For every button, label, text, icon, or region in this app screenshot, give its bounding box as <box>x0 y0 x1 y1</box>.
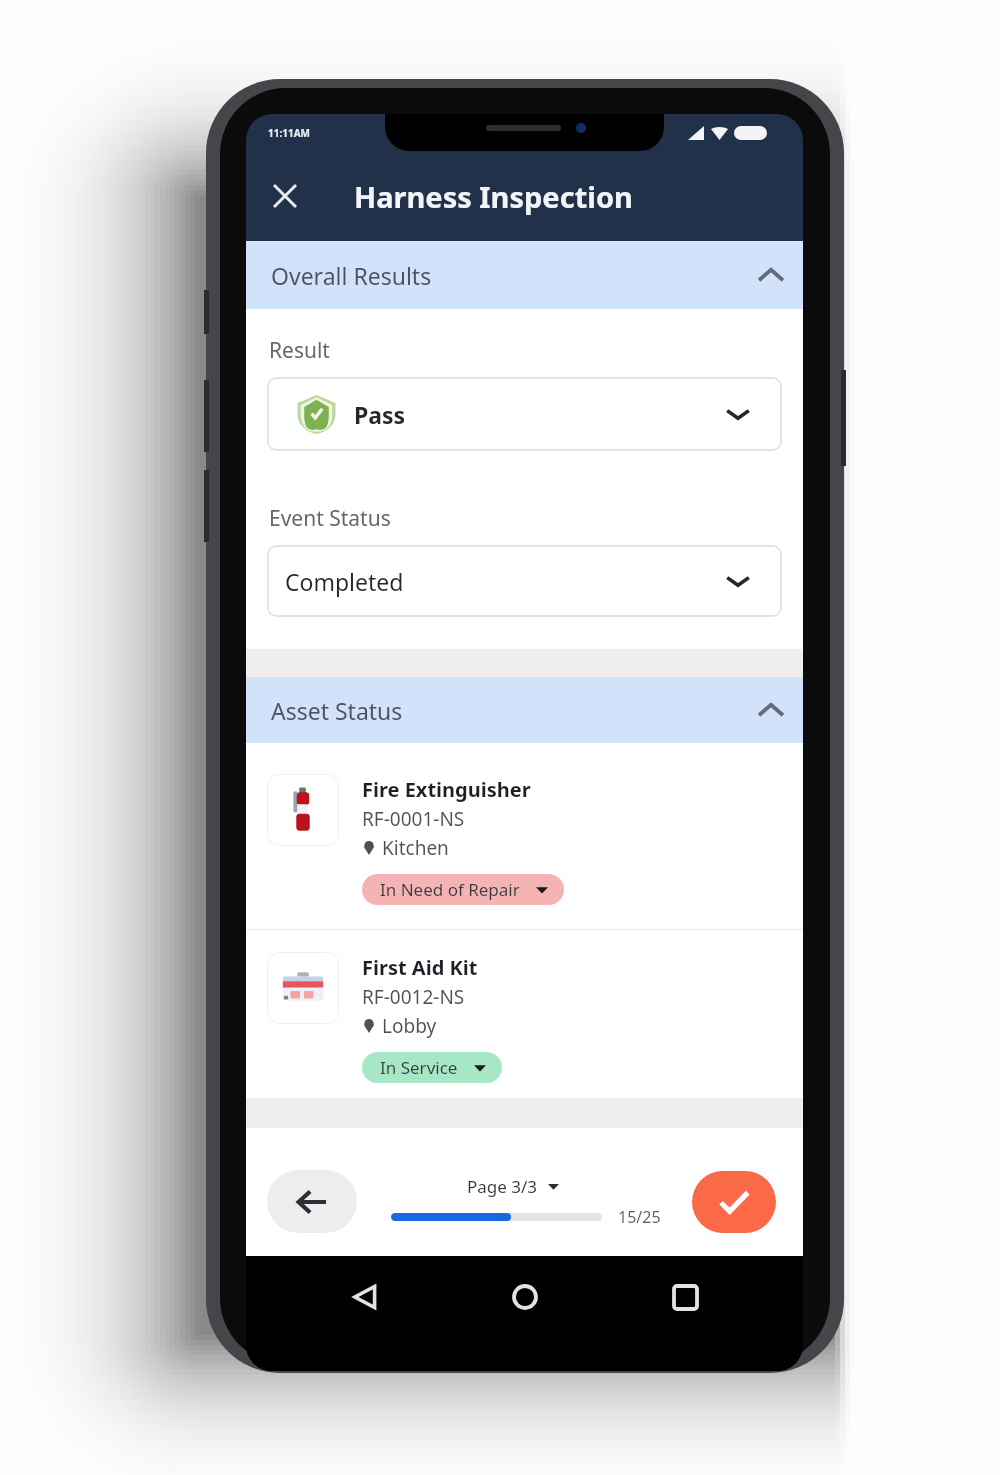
button[interactable]: Complete <box>692 1171 776 1233</box>
staticText: Lobby <box>382 1013 437 1039</box>
button[interactable]: Asset Status <box>246 677 803 743</box>
staticText: Page 3/3 <box>467 1175 538 1198</box>
staticText: RF-0012-NS <box>362 984 465 1010</box>
button[interactable]: Recent apps <box>662 1274 708 1320</box>
staticText: Event Status <box>269 504 391 533</box>
staticText: 11:11AM <box>268 126 311 140</box>
button[interactable]: Completed <box>267 545 782 617</box>
staticText: Asset Status <box>271 695 403 726</box>
button[interactable]: Back <box>342 1274 388 1320</box>
staticText: In Need of Repair <box>380 878 520 901</box>
button[interactable]: In Need of Repair <box>362 874 564 905</box>
button[interactable]: Fire Extinguisher <box>246 743 803 929</box>
button[interactable]: Previous page <box>267 1170 357 1233</box>
staticText: Result <box>269 336 330 365</box>
button[interactable]: Close <box>261 172 309 220</box>
button[interactable]: First Aid Kit <box>246 930 803 1081</box>
staticText: In Service <box>380 1056 458 1079</box>
staticText: Fire Extinguisher <box>362 776 531 803</box>
staticText: Kitchen <box>382 835 449 861</box>
button[interactable]: Overall Results <box>246 241 803 309</box>
button[interactable]: Page 3/3 <box>467 1175 559 1198</box>
button[interactable]: In Service <box>362 1052 502 1083</box>
staticText: Overall Results <box>271 260 432 291</box>
staticText: RF-0001-NS <box>362 806 465 832</box>
button[interactable]: Pass <box>267 377 782 451</box>
staticText: Completed <box>285 566 404 597</box>
staticText: 15/25 <box>618 1206 661 1228</box>
staticText: Harness Inspection <box>354 177 633 216</box>
staticText: Pass <box>354 399 406 430</box>
staticText: First Aid Kit <box>362 954 478 981</box>
button[interactable]: Home <box>502 1274 548 1320</box>
